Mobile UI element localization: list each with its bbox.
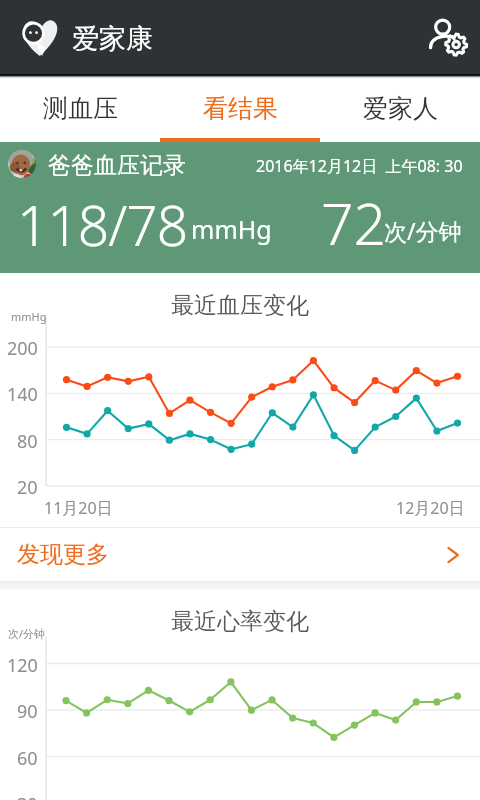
staticText: 爱家人 (363, 93, 438, 124)
staticText: 看结果 (203, 93, 278, 124)
staticText: 发现更多 (17, 540, 109, 569)
staticText: 爱家康 (72, 22, 153, 56)
staticText: 30 (17, 792, 38, 800)
staticText: 2016年12月12日 上午08: 30 (256, 155, 463, 177)
button[interactable]: 测血压 (0, 78, 160, 142)
staticText: 测血压 (43, 93, 118, 124)
button[interactable]: 看结果 (160, 78, 320, 142)
staticText: 120 (7, 653, 38, 678)
staticText: 72 (321, 184, 387, 262)
button[interactable]: Account settings (422, 11, 474, 63)
staticText: mmHg (11, 309, 47, 324)
staticText: 最近血压变化 (171, 291, 309, 320)
staticText: 11月20日 (44, 497, 113, 519)
staticText: 次/分钟 (8, 626, 46, 641)
button[interactable]: 爱家人 (320, 78, 480, 142)
staticText: 最近心率变化 (171, 607, 309, 636)
staticText: 118/78 (17, 187, 188, 262)
staticText: 20 (17, 475, 38, 500)
staticText: 90 (17, 699, 38, 724)
button[interactable]: 发现更多 (0, 528, 480, 581)
staticText: 80 (17, 429, 38, 454)
staticText: 140 (7, 382, 38, 407)
staticText: 60 (17, 746, 38, 771)
staticText: 200 (7, 336, 38, 361)
staticText: mmHg (191, 212, 272, 246)
staticText: 爸爸血压记录 (48, 151, 186, 180)
staticText: 次/分钟 (384, 215, 462, 246)
staticText: 12月20日 (396, 497, 465, 519)
